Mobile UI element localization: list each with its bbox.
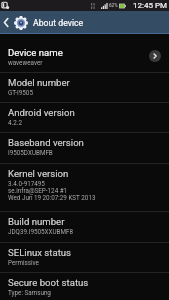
staticText: se.infra@SEP-124 #1: [8, 187, 68, 194]
staticText: Baseband version: [8, 137, 84, 148]
staticText: SELinux status: [8, 247, 72, 258]
staticText: 3.4.0-917495: [8, 180, 45, 187]
button[interactable]: SELinux status: [0, 243, 169, 273]
button[interactable]: Android version: [0, 103, 169, 133]
button[interactable]: Secure boot status: [0, 273, 169, 300]
staticText: Kernel version: [8, 168, 69, 179]
staticText: 62%: [109, 3, 118, 8]
button[interactable]: Navigate up: [0, 11, 12, 34]
button[interactable]: Build number: [0, 212, 169, 243]
other: Edit device name: [149, 50, 161, 62]
button[interactable]: Model number: [0, 73, 169, 103]
staticText: Secure boot status: [8, 277, 89, 288]
staticText: 4.2.2: [8, 119, 22, 126]
staticText: Device name: [8, 47, 63, 58]
staticText: Model number: [8, 77, 70, 88]
button[interactable]: Kernel version: [0, 164, 169, 212]
staticText: JDQ39.I9505XXUBMF8: [8, 228, 73, 235]
button[interactable]: Device name: [0, 43, 169, 73]
staticText: Wed Jun 19 20:07:29 KST 2013: [8, 194, 96, 201]
staticText: Permissive: [8, 259, 39, 266]
staticText: GT-I9505: [8, 89, 33, 96]
staticText: Android version: [8, 107, 75, 118]
staticText: Build number: [8, 216, 65, 227]
staticText: Type: Samsung: [8, 289, 51, 296]
staticText: waveweaver: [8, 59, 43, 66]
staticText: 12:45 PM: [133, 1, 167, 10]
staticText: I9505DXUBMFB: [8, 149, 53, 156]
staticText: About device: [33, 18, 84, 28]
button[interactable]: Baseband version: [0, 133, 169, 164]
